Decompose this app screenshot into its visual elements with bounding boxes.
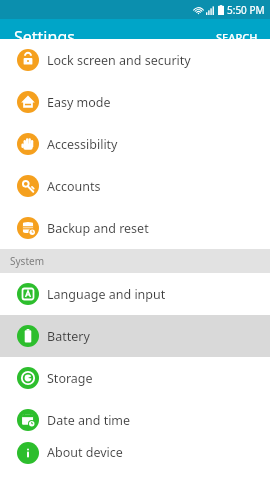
staticText: Accounts bbox=[47, 178, 101, 195]
staticText: Lock screen and security bbox=[47, 52, 191, 69]
other: HOME bbox=[17, 91, 39, 113]
button[interactable]: HAND bbox=[0, 123, 270, 165]
staticText: Settings bbox=[14, 26, 75, 48]
staticText: Battery bbox=[47, 328, 90, 345]
staticText: 5:50 PM bbox=[227, 3, 265, 17]
staticText: Backup and reset bbox=[47, 220, 149, 237]
staticText: System bbox=[10, 254, 44, 268]
other: LANG bbox=[17, 283, 39, 305]
button[interactable]: BACKUP bbox=[0, 207, 270, 249]
other: LOCK bbox=[17, 49, 39, 71]
other: DATE bbox=[17, 409, 39, 431]
staticText: Storage bbox=[47, 370, 93, 387]
button[interactable]: INFO bbox=[0, 441, 270, 464]
button[interactable]: SEARCH bbox=[204, 22, 270, 53]
button[interactable]: DATE bbox=[0, 399, 270, 441]
staticText: SEARCH bbox=[216, 30, 258, 45]
staticText: Accessibility bbox=[47, 136, 118, 153]
other: KEY bbox=[17, 175, 39, 197]
other: STORAGE bbox=[17, 367, 39, 389]
other: BACKUP bbox=[17, 217, 39, 239]
staticText: Date and time bbox=[47, 412, 131, 429]
other: INFO bbox=[17, 442, 39, 464]
button[interactable]: STORAGE bbox=[0, 357, 270, 399]
staticText: Easy mode bbox=[47, 94, 111, 111]
button[interactable]: LANG bbox=[0, 273, 270, 315]
button[interactable]: LOCK bbox=[0, 39, 270, 81]
other: BATTERY bbox=[17, 325, 39, 347]
button[interactable]: KEY bbox=[0, 165, 270, 207]
button[interactable]: BATTERY bbox=[0, 315, 270, 357]
other: HAND bbox=[17, 133, 39, 155]
staticText: About device bbox=[47, 444, 123, 461]
button[interactable]: HOME bbox=[0, 81, 270, 123]
staticText: Language and input bbox=[47, 286, 166, 303]
